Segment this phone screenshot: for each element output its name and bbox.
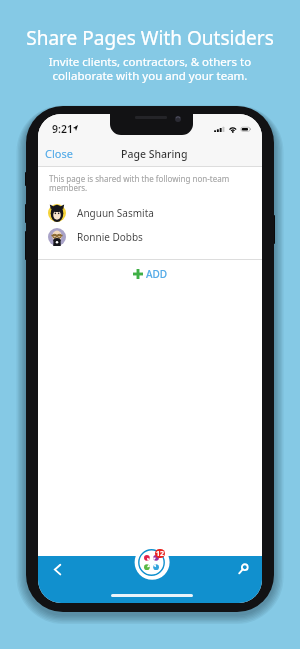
staticText: 9:21	[52, 122, 73, 136]
button[interactable]: Search	[235, 561, 252, 578]
staticText: Close	[45, 146, 73, 161]
staticText: Ronnie Dobbs	[77, 230, 143, 244]
staticText: This page is shared with the following n…	[49, 173, 239, 194]
button[interactable]: Anguun Sasmita	[38, 204, 262, 222]
staticText: 12	[156, 549, 165, 558]
button[interactable]: Open app menu	[138, 549, 165, 576]
staticText: Page Sharing	[121, 147, 188, 161]
staticText: Share Pages With Outsiders	[0, 25, 300, 51]
button[interactable]: Close	[40, 143, 78, 164]
button[interactable]: Ronnie Dobbs	[38, 228, 262, 246]
staticText: Invite clients, contractors, & others to…	[0, 54, 300, 84]
staticText: Anguun Sasmita	[77, 206, 154, 220]
staticText: ADD	[146, 267, 168, 281]
button[interactable]: Back	[50, 561, 66, 577]
button[interactable]: ADD	[38, 265, 262, 283]
